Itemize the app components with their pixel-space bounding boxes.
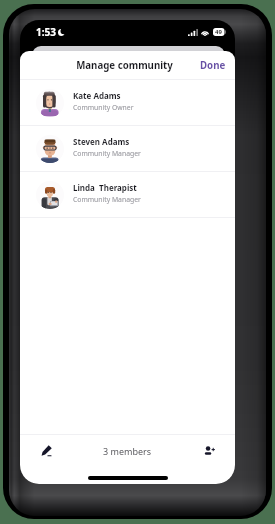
staticText: 1:53 xyxy=(36,25,56,39)
staticText: Linda Therapist xyxy=(73,182,137,193)
button[interactable]: Edit xyxy=(20,435,72,466)
staticText: 3 members xyxy=(103,445,152,457)
staticText: Steven Adams xyxy=(73,136,130,147)
staticText: 49 xyxy=(215,28,222,36)
button[interactable]: Add member xyxy=(183,435,235,466)
button[interactable]: Done xyxy=(191,54,235,77)
staticText: Done xyxy=(200,59,226,72)
button[interactable]: Steven Adams xyxy=(20,126,235,171)
staticText: Manage community xyxy=(76,59,173,72)
button[interactable]: Kate Adams xyxy=(20,80,235,125)
staticText: Community Manager xyxy=(73,149,141,158)
staticText: Kate Adams xyxy=(73,90,121,101)
staticText: Community Manager xyxy=(73,195,141,204)
button[interactable]: Linda Therapist xyxy=(20,172,235,217)
staticText: Community Owner xyxy=(73,103,134,112)
